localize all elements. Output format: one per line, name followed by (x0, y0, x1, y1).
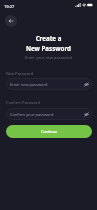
button[interactable]: Back (5, 15, 17, 27)
button[interactable]: Continue (6, 125, 92, 138)
staticText: New Password (6, 71, 34, 76)
other: Toggle password visibility (84, 82, 89, 87)
staticText: Enter your new password (0, 55, 97, 60)
button[interactable]: Confirm your password (6, 108, 92, 120)
staticText: 19:27 (4, 4, 15, 9)
staticText: Confirm your password (10, 112, 54, 117)
staticText: Create a New Password (0, 34, 97, 53)
staticText: Confirm Password (6, 100, 40, 105)
staticText: Continue (41, 129, 58, 134)
other: Toggle password visibility (84, 112, 89, 117)
button[interactable]: Enter new password (6, 78, 92, 90)
staticText: Enter new password (10, 82, 48, 87)
